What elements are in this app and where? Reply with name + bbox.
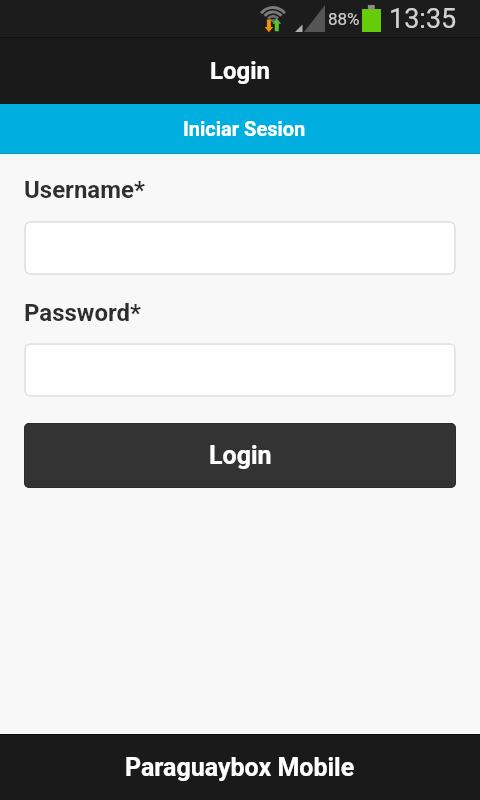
button[interactable]: Paraguaybox Mobile [0,735,480,800]
staticText: Username* [24,176,145,204]
button[interactable]: Login [24,423,456,488]
other: Wi-Fi [259,0,287,37]
staticText: Login [209,441,272,470]
staticText: Login [210,57,271,85]
other: Signal strength [296,0,325,37]
other: Battery 88 percent [362,0,381,37]
staticText: 13:35 [389,3,457,35]
staticText: Password* [24,299,141,327]
staticText: Iniciar Sesion [183,117,306,140]
button[interactable]: Iniciar Sesion [0,104,480,153]
staticText: Paraguaybox Mobile [125,753,355,782]
button[interactable]: Password [24,343,456,397]
staticText: 88% [328,9,360,29]
button[interactable]: Username [24,221,456,275]
